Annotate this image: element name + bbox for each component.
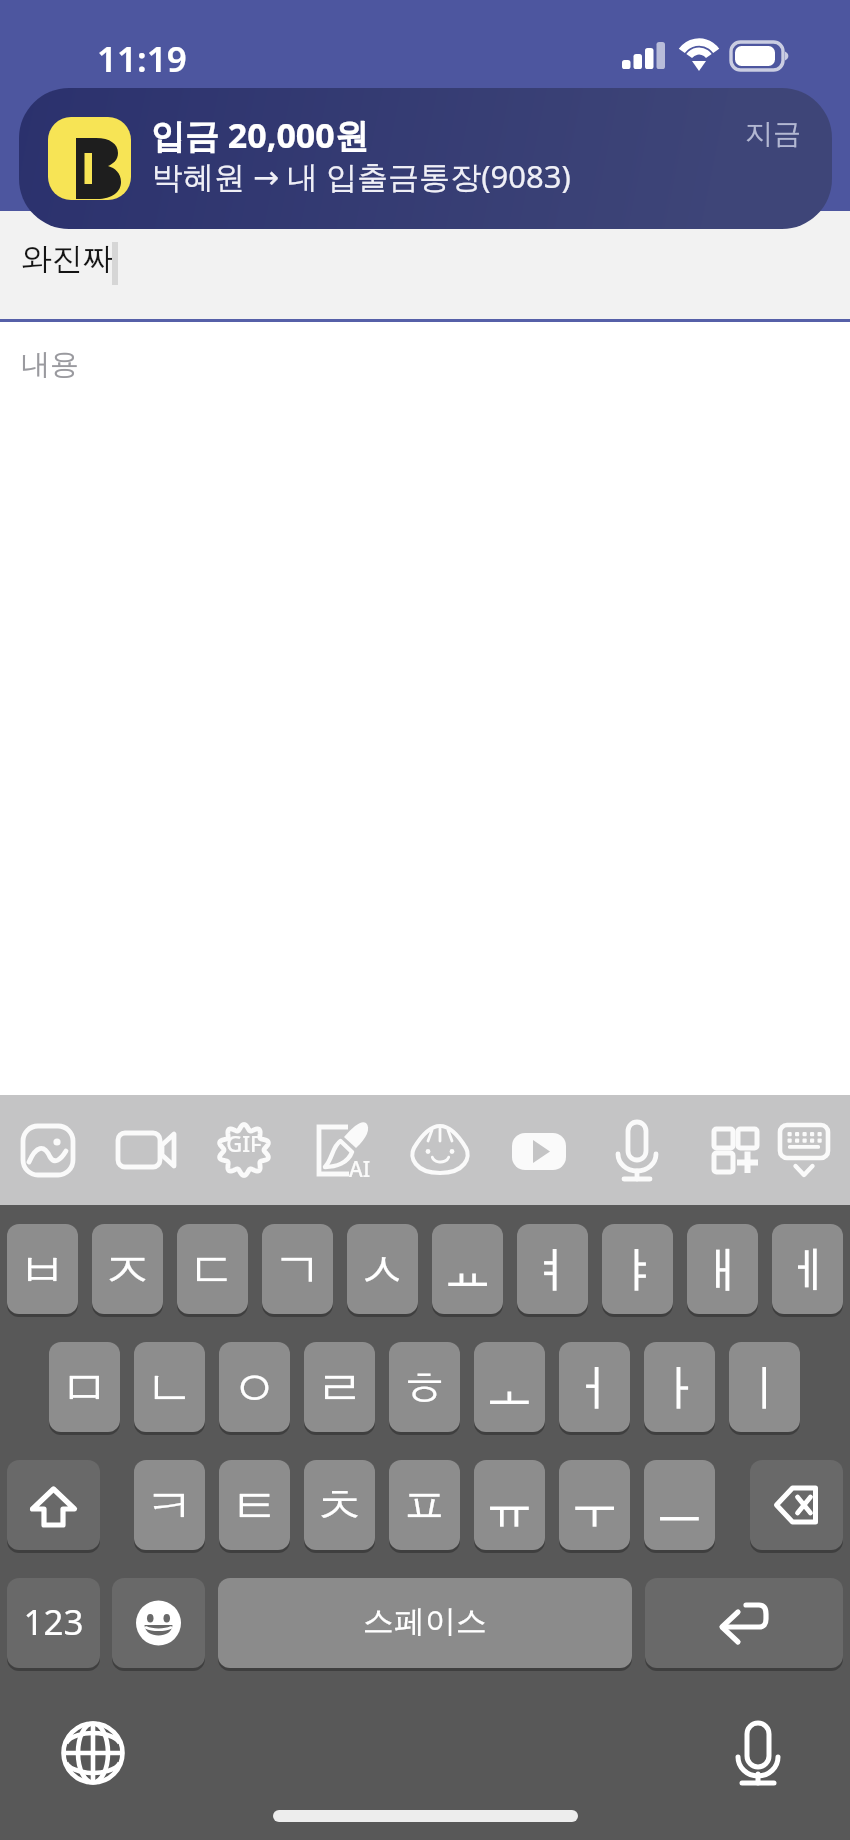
staticText: 박혜원 → 내 입출금통장(9083) <box>152 155 571 197</box>
button[interactable]: Sticker <box>396 1105 486 1195</box>
button[interactable]: Voice input <box>717 1711 797 1791</box>
button[interactable]: ㅡ <box>644 1460 715 1550</box>
staticText: ㅔ <box>783 1240 832 1302</box>
staticText: ㄹ <box>315 1358 364 1420</box>
staticText: ㄷ <box>188 1240 237 1302</box>
button[interactable]: YouTube <box>494 1105 584 1195</box>
button[interactable]: GIF <box>199 1105 289 1195</box>
staticText: ㅣ <box>740 1358 789 1420</box>
staticText: ㅡ <box>655 1476 704 1538</box>
button[interactable]: ㅎ <box>389 1342 460 1432</box>
button[interactable]: AI draw <box>297 1105 387 1195</box>
button[interactable]: ㅇ <box>219 1342 290 1432</box>
staticText: ㅗ <box>485 1358 534 1420</box>
button[interactable]: Shortcuts <box>690 1105 780 1195</box>
staticText: ㅅ <box>358 1240 407 1302</box>
button[interactable]: ㅋ <box>134 1460 205 1550</box>
button[interactable]: 와진짜 <box>0 211 850 319</box>
button[interactable]: Shift <box>7 1460 100 1550</box>
button[interactable]: ㅁ <box>49 1342 120 1432</box>
button[interactable]: ㄴ <box>134 1342 205 1432</box>
staticText: ㅂ <box>18 1240 67 1302</box>
staticText: ㅜ <box>570 1476 619 1538</box>
button[interactable]: ㅂ <box>7 1224 78 1314</box>
button[interactable]: ㅍ <box>389 1460 460 1550</box>
button[interactable]: ㅈ <box>92 1224 163 1314</box>
staticText: 스페이스 <box>363 1602 487 1641</box>
staticText: ㅌ <box>230 1476 279 1538</box>
button[interactable]: Voice input <box>592 1105 682 1195</box>
staticText: ㄱ <box>273 1240 322 1302</box>
staticText: ㅕ <box>528 1240 577 1302</box>
button[interactable]: ㅑ <box>602 1224 673 1314</box>
staticText: ㅁ <box>60 1358 109 1420</box>
staticText: AI <box>349 1155 371 1184</box>
button[interactable]: Backspace <box>750 1460 843 1550</box>
staticText: 지금 <box>745 116 801 151</box>
staticText: 입금 20,000원 <box>151 112 369 158</box>
staticText: GIF <box>226 1128 262 1158</box>
button[interactable]: 입금 20,000원 <box>19 88 832 229</box>
button[interactable]: 스페이스 <box>218 1578 632 1668</box>
button[interactable]: ㅊ <box>304 1460 375 1550</box>
button[interactable]: Video <box>101 1105 191 1195</box>
staticText: ㅏ <box>655 1358 704 1420</box>
button[interactable]: ㄷ <box>177 1224 248 1314</box>
button[interactable]: ㅕ <box>517 1224 588 1314</box>
button[interactable]: Emoji <box>112 1578 205 1668</box>
staticText: 와진짜 <box>21 239 114 278</box>
button[interactable]: ㅣ <box>729 1342 800 1432</box>
staticText: 11:19 <box>97 35 187 83</box>
button[interactable]: ㅜ <box>559 1460 630 1550</box>
button[interactable]: ㅔ <box>772 1224 843 1314</box>
staticText: ㄴ <box>145 1358 194 1420</box>
button[interactable]: ㅗ <box>474 1342 545 1432</box>
staticText: ㅠ <box>485 1476 534 1538</box>
staticText: ㅛ <box>443 1240 492 1302</box>
staticText: ㅋ <box>145 1476 194 1538</box>
staticText: ㅎ <box>400 1358 449 1420</box>
staticText: ㅍ <box>400 1476 449 1538</box>
button[interactable]: Enter <box>645 1578 843 1668</box>
button[interactable]: Image <box>3 1105 93 1195</box>
button[interactable]: ㅠ <box>474 1460 545 1550</box>
button[interactable]: ㅏ <box>644 1342 715 1432</box>
staticText: ㅑ <box>613 1240 662 1302</box>
button[interactable]: Change language <box>53 1713 133 1793</box>
button[interactable]: ㄹ <box>304 1342 375 1432</box>
button[interactable]: 123 <box>7 1578 100 1668</box>
staticText: ㅈ <box>103 1240 152 1302</box>
staticText: 내용 <box>21 346 79 383</box>
button[interactable]: ㅌ <box>219 1460 290 1550</box>
staticText: 123 <box>23 1598 84 1646</box>
staticText: ㅊ <box>315 1476 364 1538</box>
button[interactable]: ㅓ <box>559 1342 630 1432</box>
button[interactable]: ㅐ <box>687 1224 758 1314</box>
staticText: ㅇ <box>230 1358 279 1420</box>
button[interactable]: ㅛ <box>432 1224 503 1314</box>
staticText: ㅓ <box>570 1358 619 1420</box>
button[interactable]: Hide keyboard <box>759 1105 849 1195</box>
button[interactable]: ㄱ <box>262 1224 333 1314</box>
staticText: ㅐ <box>698 1240 747 1302</box>
button[interactable]: ㅅ <box>347 1224 418 1314</box>
